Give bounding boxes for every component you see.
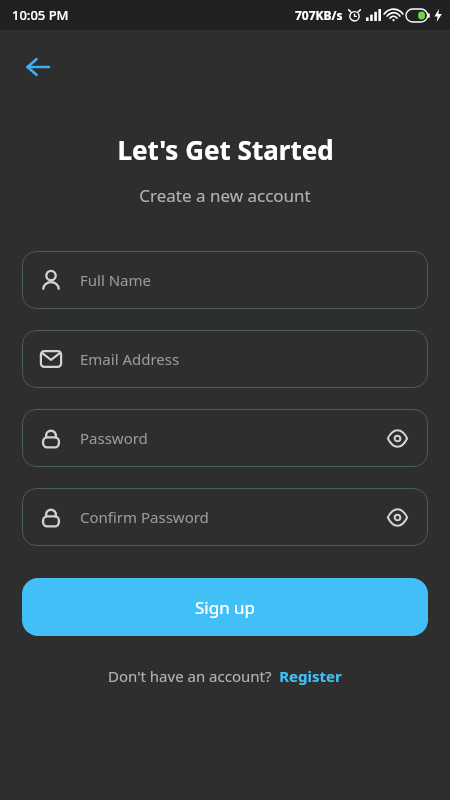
button[interactable]: Email Address [22, 330, 428, 388]
staticText: 707KB/s [295, 7, 343, 23]
staticText: Confirm Password [80, 507, 382, 527]
staticText: Let's Get Started [117, 132, 334, 167]
button[interactable]: Don't have an account? Register [100, 662, 350, 690]
button[interactable]: Show password [382, 502, 412, 532]
button[interactable]: Password [22, 409, 428, 467]
staticText: Don't have an account? Register [108, 666, 342, 686]
staticText: Full Name [80, 270, 412, 290]
button[interactable]: Confirm Password [22, 488, 428, 546]
staticText: 10:05 PM [12, 6, 69, 24]
button[interactable]: Sign up [22, 578, 428, 636]
button[interactable]: Full Name [22, 251, 428, 309]
staticText: Sign up [195, 596, 256, 619]
staticText: Email Address [80, 349, 412, 369]
button[interactable]: Back [18, 47, 58, 87]
button[interactable]: Show password [382, 423, 412, 453]
staticText: Password [80, 428, 382, 448]
staticText: Create a new account [139, 184, 311, 207]
